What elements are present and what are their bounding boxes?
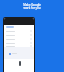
button[interactable] xyxy=(4,45,34,47)
button[interactable] xyxy=(4,41,34,45)
other: Assistant xyxy=(19,61,21,66)
staticText: Make Google work for you xyxy=(23,3,41,10)
button[interactable] xyxy=(4,52,34,55)
button[interactable] xyxy=(4,29,34,33)
button[interactable] xyxy=(4,37,34,41)
button[interactable] xyxy=(4,33,34,37)
